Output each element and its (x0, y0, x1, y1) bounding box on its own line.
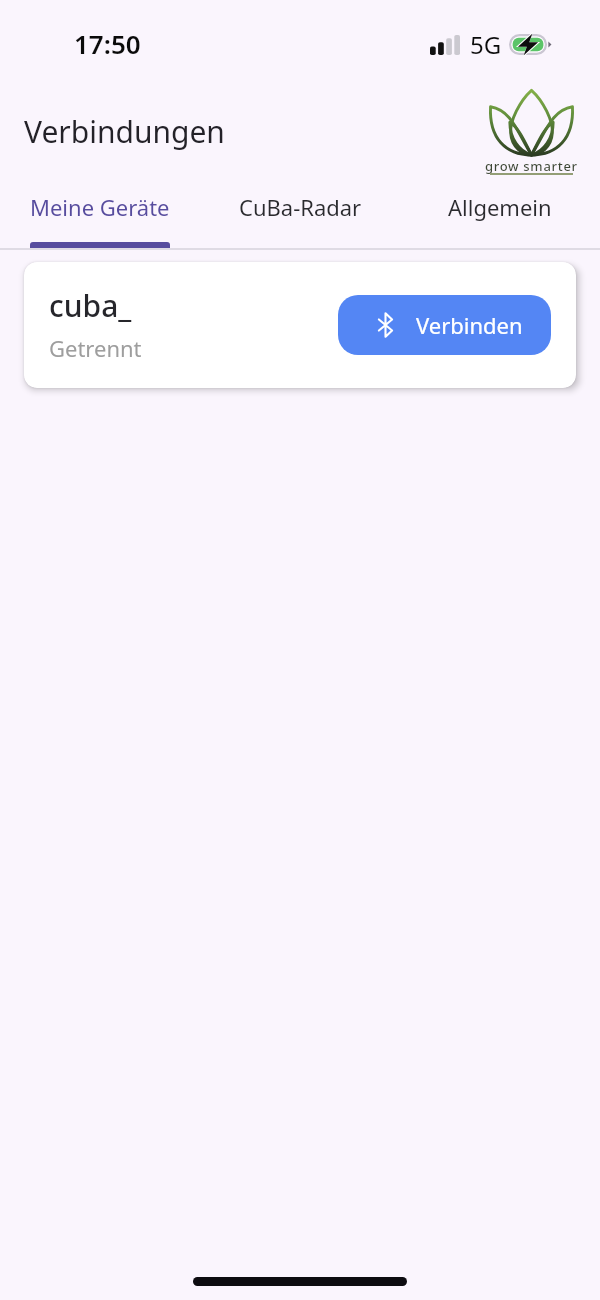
button[interactable]: CuBa-Radar (200, 184, 400, 250)
staticText: Verbinden (416, 310, 523, 340)
staticText: CuBa-Radar (239, 192, 362, 222)
staticText: cuba_ (49, 285, 132, 326)
staticText: Verbindungen (24, 111, 225, 152)
staticText: 5G (470, 28, 502, 61)
staticText: Allgemein (448, 192, 552, 222)
other: Bluetooth (378, 313, 393, 337)
button[interactable]: cuba_ (24, 262, 576, 388)
staticText: 17:50 (74, 26, 141, 61)
button[interactable]: Allgemein (400, 184, 600, 250)
button[interactable]: grow smarter logo (485, 89, 578, 177)
button[interactable]: Meine Geräte (0, 184, 200, 250)
staticText: grow smarter (485, 157, 578, 175)
staticText: Meine Geräte (30, 192, 170, 222)
staticText: Getrennt (49, 333, 142, 363)
button[interactable]: Bluetooth (338, 295, 551, 355)
